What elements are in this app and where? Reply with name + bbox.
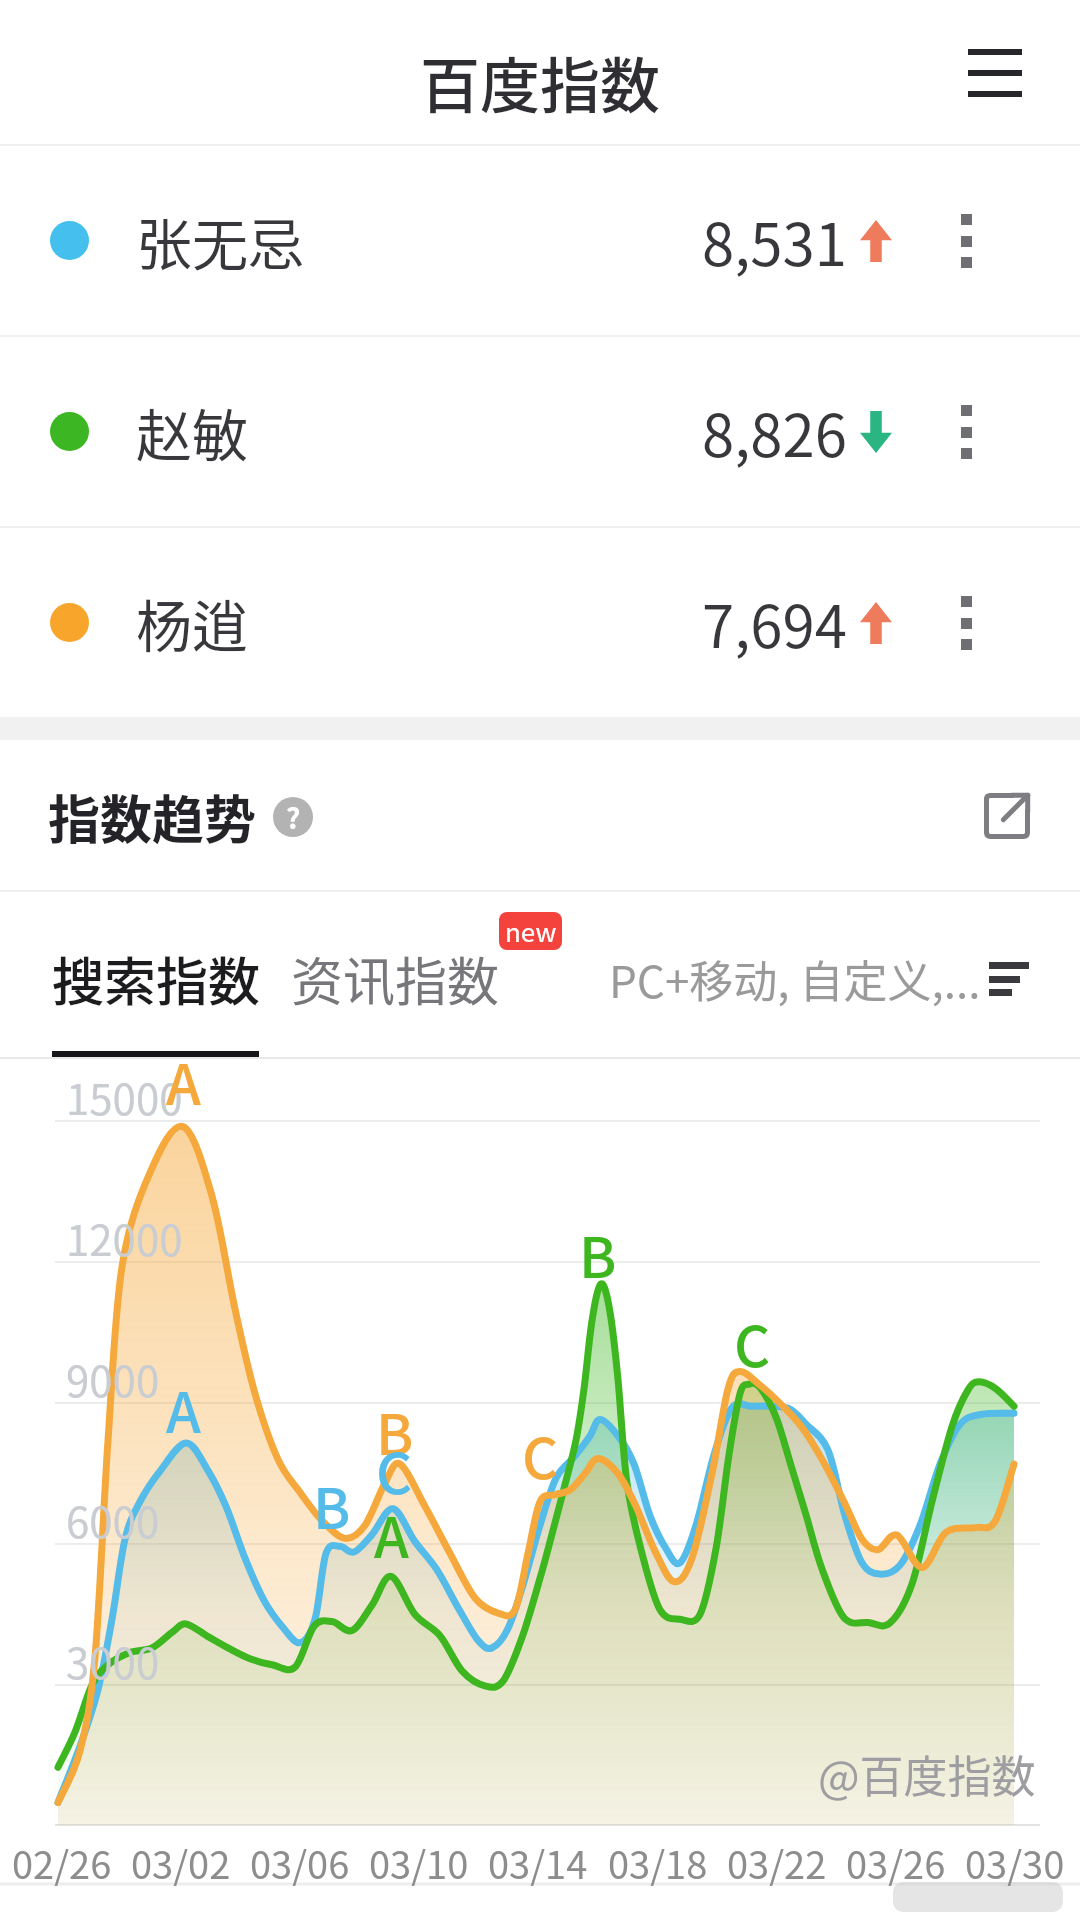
button[interactable]: ?	[273, 797, 313, 837]
staticText: C	[734, 1302, 771, 1382]
button[interactable]	[958, 596, 974, 650]
staticText: 8,826	[702, 390, 847, 474]
staticText: 03/14	[488, 1835, 588, 1890]
staticText: C	[522, 1414, 559, 1494]
staticText: B	[376, 1390, 414, 1470]
button[interactable]	[958, 405, 974, 459]
staticText: 03/26	[846, 1835, 946, 1890]
staticText: B	[579, 1213, 617, 1293]
staticText: B	[313, 1464, 351, 1544]
staticText: 6000	[66, 1489, 160, 1545]
staticText: PC+移动, 自定义,...	[609, 947, 981, 1011]
button[interactable]: 赵敏	[0, 337, 1080, 526]
staticText: 赵敏	[136, 391, 248, 472]
staticText: 03/10	[369, 1835, 469, 1890]
button[interactable]: 张无忌	[0, 146, 1080, 335]
staticText: 资讯指数	[291, 941, 500, 1016]
button[interactable]: 杨逍	[0, 528, 1080, 717]
staticText: 12000	[66, 1207, 183, 1263]
staticText: 8,531	[702, 199, 847, 283]
staticText: 9000	[66, 1348, 160, 1404]
staticText: 3000	[66, 1630, 160, 1686]
staticText: 杨逍	[136, 582, 248, 663]
button[interactable]: PC+移动, 自定义,...	[609, 947, 1029, 1011]
button[interactable]	[958, 214, 974, 268]
button[interactable]: 搜索指数	[52, 941, 261, 1016]
staticText: ?	[286, 797, 301, 837]
button[interactable]	[984, 793, 1030, 839]
staticText: 03/22	[727, 1835, 827, 1890]
staticText: @百度指数	[818, 1742, 1036, 1802]
staticText: 03/30	[965, 1835, 1065, 1890]
staticText: 15000	[66, 1066, 183, 1122]
staticText: 7,694	[702, 581, 847, 665]
staticText: 张无忌	[136, 200, 304, 281]
staticText: 02/26	[12, 1835, 112, 1890]
staticText: 百度指数	[420, 38, 660, 125]
staticText: A	[166, 1368, 201, 1448]
button[interactable]	[968, 49, 1022, 97]
staticText: 03/02	[131, 1835, 231, 1890]
staticText: 03/06	[250, 1835, 350, 1890]
staticText: A	[166, 1040, 201, 1120]
staticText: 搜索指数	[52, 941, 261, 1016]
staticText: C	[376, 1429, 413, 1509]
staticText: A	[374, 1493, 409, 1573]
staticText: 03/18	[608, 1835, 708, 1890]
button[interactable]: 资讯指数	[291, 941, 500, 1016]
staticText: new	[505, 912, 557, 950]
staticText: 指数趋势	[48, 779, 257, 854]
